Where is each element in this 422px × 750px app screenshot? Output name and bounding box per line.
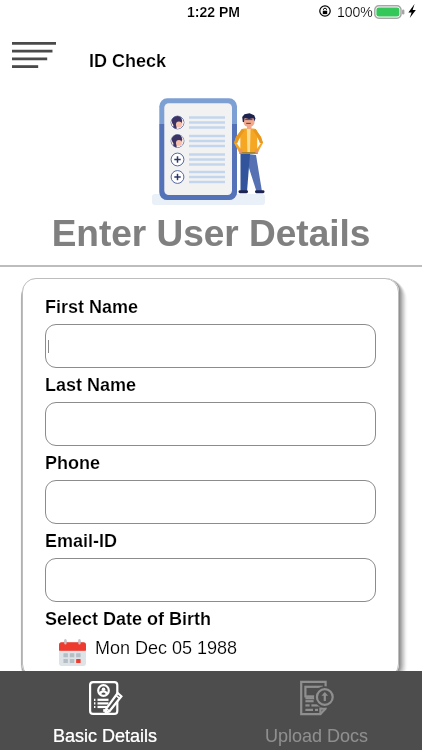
button[interactable]: Menu [4, 38, 64, 72]
staticText: 1:22 PM [187, 4, 240, 20]
staticText: Basic Details [53, 726, 158, 746]
button[interactable] [45, 558, 376, 602]
button[interactable] [45, 402, 376, 446]
staticText: Enter User Details [0, 213, 422, 254]
button[interactable]: Mon Dec 05 1988 [59, 636, 238, 664]
button[interactable] [45, 324, 376, 368]
staticText: Select Date of Birth [45, 609, 212, 629]
button[interactable]: Upload Docs [211, 671, 422, 750]
staticText: 100% [337, 4, 373, 20]
staticText: First Name [45, 297, 139, 317]
staticText: Mon Dec 05 1988 [95, 638, 238, 658]
button[interactable] [45, 480, 376, 524]
staticText: Last Name [45, 375, 137, 395]
staticText: ID Check [89, 51, 167, 71]
button[interactable]: Basic Details [0, 671, 211, 750]
staticText: Email-ID [45, 531, 118, 551]
staticText: Upload Docs [265, 726, 369, 746]
staticText: Phone [45, 453, 101, 473]
